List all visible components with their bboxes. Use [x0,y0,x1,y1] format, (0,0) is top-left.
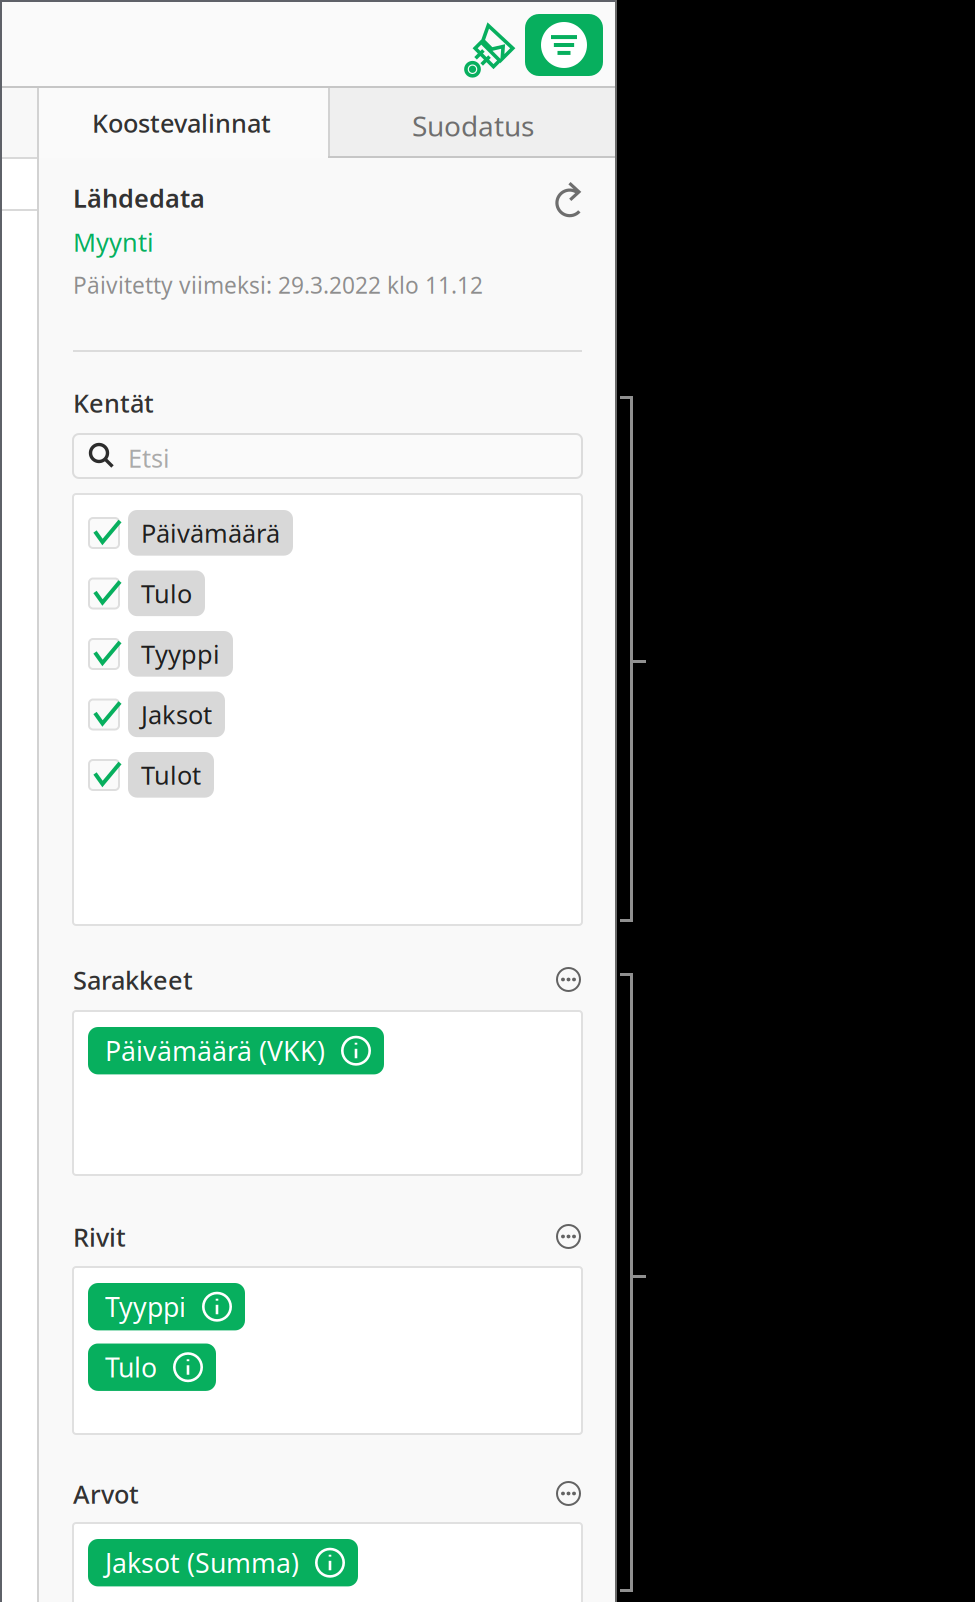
staticText: Myynti [73,225,154,259]
button[interactable]: Tulot [73,752,582,798]
button[interactable]: Organize [525,14,603,76]
button[interactable]: Suodatus [328,88,617,158]
staticText: Kentät [73,386,154,420]
staticText: Arvot [73,1477,139,1511]
button[interactable]: Tulo [73,570,582,616]
staticText: Suodatus [412,107,534,144]
staticText: Lähdedata [73,181,205,215]
button[interactable]: Päivämäärä (VKK) [88,1027,384,1074]
button[interactable]: Myynti [73,225,154,259]
button[interactable]: More options for Sarakkeet [546,957,591,1002]
button[interactable]: More options for Arvot [546,1471,591,1516]
staticText: Koostevalinnat [92,106,271,140]
staticText: Päivämäärä (VKK) [105,1033,325,1068]
staticText: Jaksot (Summa) [105,1545,299,1580]
button[interactable]: Päivämäärä [73,510,582,556]
button[interactable]: Koostevalinnat [39,88,328,158]
staticText: Etsi [128,441,170,475]
staticText: Rivit [73,1220,126,1254]
button[interactable]: Tyyppi [88,1283,245,1330]
staticText: Tulo [105,1349,157,1385]
staticText: Tyyppi [141,637,220,671]
button[interactable]: Jaksot (Summa) [88,1539,358,1586]
staticText: Päivitetty viimeksi: 29.3.2022 klo 11.12 [73,270,483,300]
staticText: Jaksot [141,697,212,731]
staticText: Päivämäärä [141,516,280,550]
button[interactable]: Etsi [73,434,582,478]
button[interactable]: Tyyppi [73,631,582,677]
button[interactable]: Format [458,18,522,82]
button[interactable]: Refresh source data [545,174,597,226]
button[interactable]: More options for Rivit [546,1214,591,1259]
button[interactable]: Jaksot [73,691,582,737]
staticText: Sarakkeet [73,963,193,997]
button[interactable]: Tulo [88,1343,216,1391]
staticText: Tulo [141,576,192,610]
staticText: Tulot [141,758,201,792]
staticText: Tyyppi [105,1289,186,1324]
